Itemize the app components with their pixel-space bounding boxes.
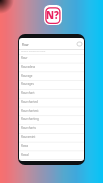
button[interactable]: flouramint [19, 133, 84, 142]
button[interactable]: flourchart [19, 89, 84, 98]
staticText: flowsl [21, 153, 29, 157]
button[interactable]: flows [19, 142, 84, 151]
button[interactable]: flouradess [19, 63, 84, 72]
button[interactable]: N? [44, 5, 62, 25]
staticText: search results for flour [21, 50, 46, 53]
button[interactable]: flourcharting [19, 115, 84, 124]
staticText: N? [46, 9, 59, 22]
staticText: flourcharting [21, 117, 39, 121]
staticText: flouradess [21, 65, 36, 69]
staticText: flourages [21, 82, 34, 86]
staticText: Flour [22, 43, 29, 47]
button[interactable]: flourcharts [19, 124, 84, 133]
button[interactable]: flour [19, 54, 84, 63]
staticText: flourchart [21, 91, 35, 95]
button[interactable]: Account [77, 42, 82, 46]
staticText: flourcharts [21, 126, 36, 130]
button[interactable]: flourage [19, 72, 84, 81]
button[interactable]: flourchartest [19, 107, 84, 116]
staticText: flows [21, 144, 29, 148]
button[interactable]: flourages [19, 80, 84, 89]
button[interactable]: flourcharted [19, 98, 84, 107]
staticText: flourcharted [21, 100, 38, 104]
button[interactable]: Flour [22, 38, 82, 50]
button[interactable]: flowsl [19, 151, 84, 160]
button[interactable]: flowers [19, 159, 84, 161]
staticText: flourage [21, 74, 33, 78]
staticText: flourchartest [21, 109, 39, 113]
staticText: flour [21, 56, 28, 60]
staticText: flouramint [21, 135, 36, 139]
